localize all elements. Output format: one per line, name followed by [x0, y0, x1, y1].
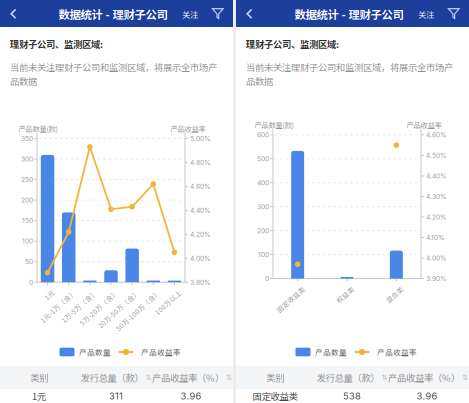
staticText: ⇅	[226, 373, 232, 382]
staticText: ⇅	[381, 373, 387, 382]
staticText: 固定收益类	[269, 283, 304, 292]
staticText: 300	[257, 203, 269, 211]
staticText: 300	[21, 155, 33, 163]
button[interactable]: 返回	[4, 3, 22, 25]
button[interactable]: 关注	[179, 5, 201, 23]
staticText: 产品数量	[315, 346, 347, 357]
staticText: 品数据	[10, 74, 37, 88]
staticText: 发行总量（款）	[316, 371, 379, 384]
staticText: 0	[265, 275, 269, 283]
staticText: 4.10%	[426, 233, 445, 242]
staticText: 产品收益率	[170, 123, 205, 134]
staticText: 4.40%	[190, 206, 211, 214]
staticText: 100万以上	[147, 286, 180, 296]
staticText: 5万-20万（含）	[68, 286, 117, 296]
staticText: 类别	[266, 371, 284, 384]
staticText: 1万-5万（含）	[51, 286, 96, 296]
button[interactable]: 筛选	[208, 4, 228, 23]
staticText: 产品收益率	[141, 346, 181, 357]
staticText: 100	[258, 251, 269, 259]
staticText: ⇅	[145, 373, 151, 382]
button[interactable]: 返回	[240, 3, 258, 25]
staticText: 产品数量(款)	[254, 120, 293, 130]
staticText: 3.90%	[426, 275, 447, 283]
staticText: 3.96	[180, 390, 201, 402]
staticText: 250	[21, 175, 33, 184]
staticText: 固定收益类	[252, 389, 297, 403]
staticText: 3.80%	[190, 278, 211, 286]
staticText: 200	[257, 227, 269, 235]
staticText: 20万-50万（含）	[85, 286, 138, 296]
staticText: 产品收益率（%）	[152, 371, 224, 384]
staticText: 产品收益率	[406, 120, 441, 130]
staticText: 4.40%	[426, 172, 447, 180]
staticText: 4.20%	[426, 213, 447, 221]
staticText: 500	[257, 155, 269, 163]
staticText: 600	[257, 131, 269, 139]
button[interactable]: 筛选	[444, 4, 464, 23]
staticText: 产品收益率	[377, 346, 417, 357]
staticText: 4.00%	[190, 254, 211, 262]
staticText: 150	[22, 217, 33, 225]
staticText: 4.80%	[190, 158, 211, 166]
staticText: ⇅	[462, 373, 468, 382]
staticText: 4.30%	[426, 192, 447, 201]
staticText: 类别	[30, 371, 48, 384]
staticText: 关注	[182, 8, 198, 20]
staticText: 数据统计 - 理财子公司	[58, 6, 167, 22]
staticText: 关注	[418, 8, 434, 20]
staticText: 产品收益率（%）	[388, 371, 460, 384]
staticText: 1元	[43, 286, 54, 296]
staticText: 4.60%	[190, 182, 211, 190]
staticText: 400	[257, 179, 269, 187]
staticText: 发行总量（款）	[80, 371, 143, 384]
staticText: 4.60%	[426, 131, 447, 139]
staticText: 100	[22, 237, 33, 245]
staticText: 产品数量(款)	[18, 123, 57, 134]
staticText: 4.20%	[190, 230, 211, 238]
staticText: 品数据	[246, 74, 273, 88]
staticText: 3.96	[416, 390, 437, 402]
staticText: 538	[343, 390, 361, 402]
staticText: 理财子公司、监测区域:	[10, 37, 103, 51]
staticText: 混合类	[381, 283, 402, 292]
staticText: 350	[21, 134, 33, 143]
staticText: 50万-100万（含）	[102, 286, 159, 296]
staticText: 4.50%	[426, 151, 447, 159]
button[interactable]: 关注	[415, 5, 437, 23]
staticText: 理财子公司、监测区域:	[246, 37, 339, 51]
staticText: 0	[29, 278, 33, 286]
staticText: 数据统计 - 理财子公司	[294, 6, 403, 22]
staticText: 50	[25, 258, 33, 266]
staticText: 当前未关注理财子公司和监测区域，将展示全市场产	[246, 60, 453, 74]
staticText: 311	[109, 390, 123, 402]
staticText: 当前未关注理财子公司和监测区域，将展示全市场产	[10, 60, 217, 74]
staticText: 产品数量	[79, 346, 111, 357]
staticText: 4.00%	[426, 254, 447, 262]
staticText: 200	[21, 196, 33, 204]
staticText: 1元-1万（含）	[30, 286, 75, 296]
staticText: 权益类	[332, 283, 353, 292]
staticText: 1元	[32, 389, 46, 403]
staticText: 5.00%	[190, 134, 211, 143]
